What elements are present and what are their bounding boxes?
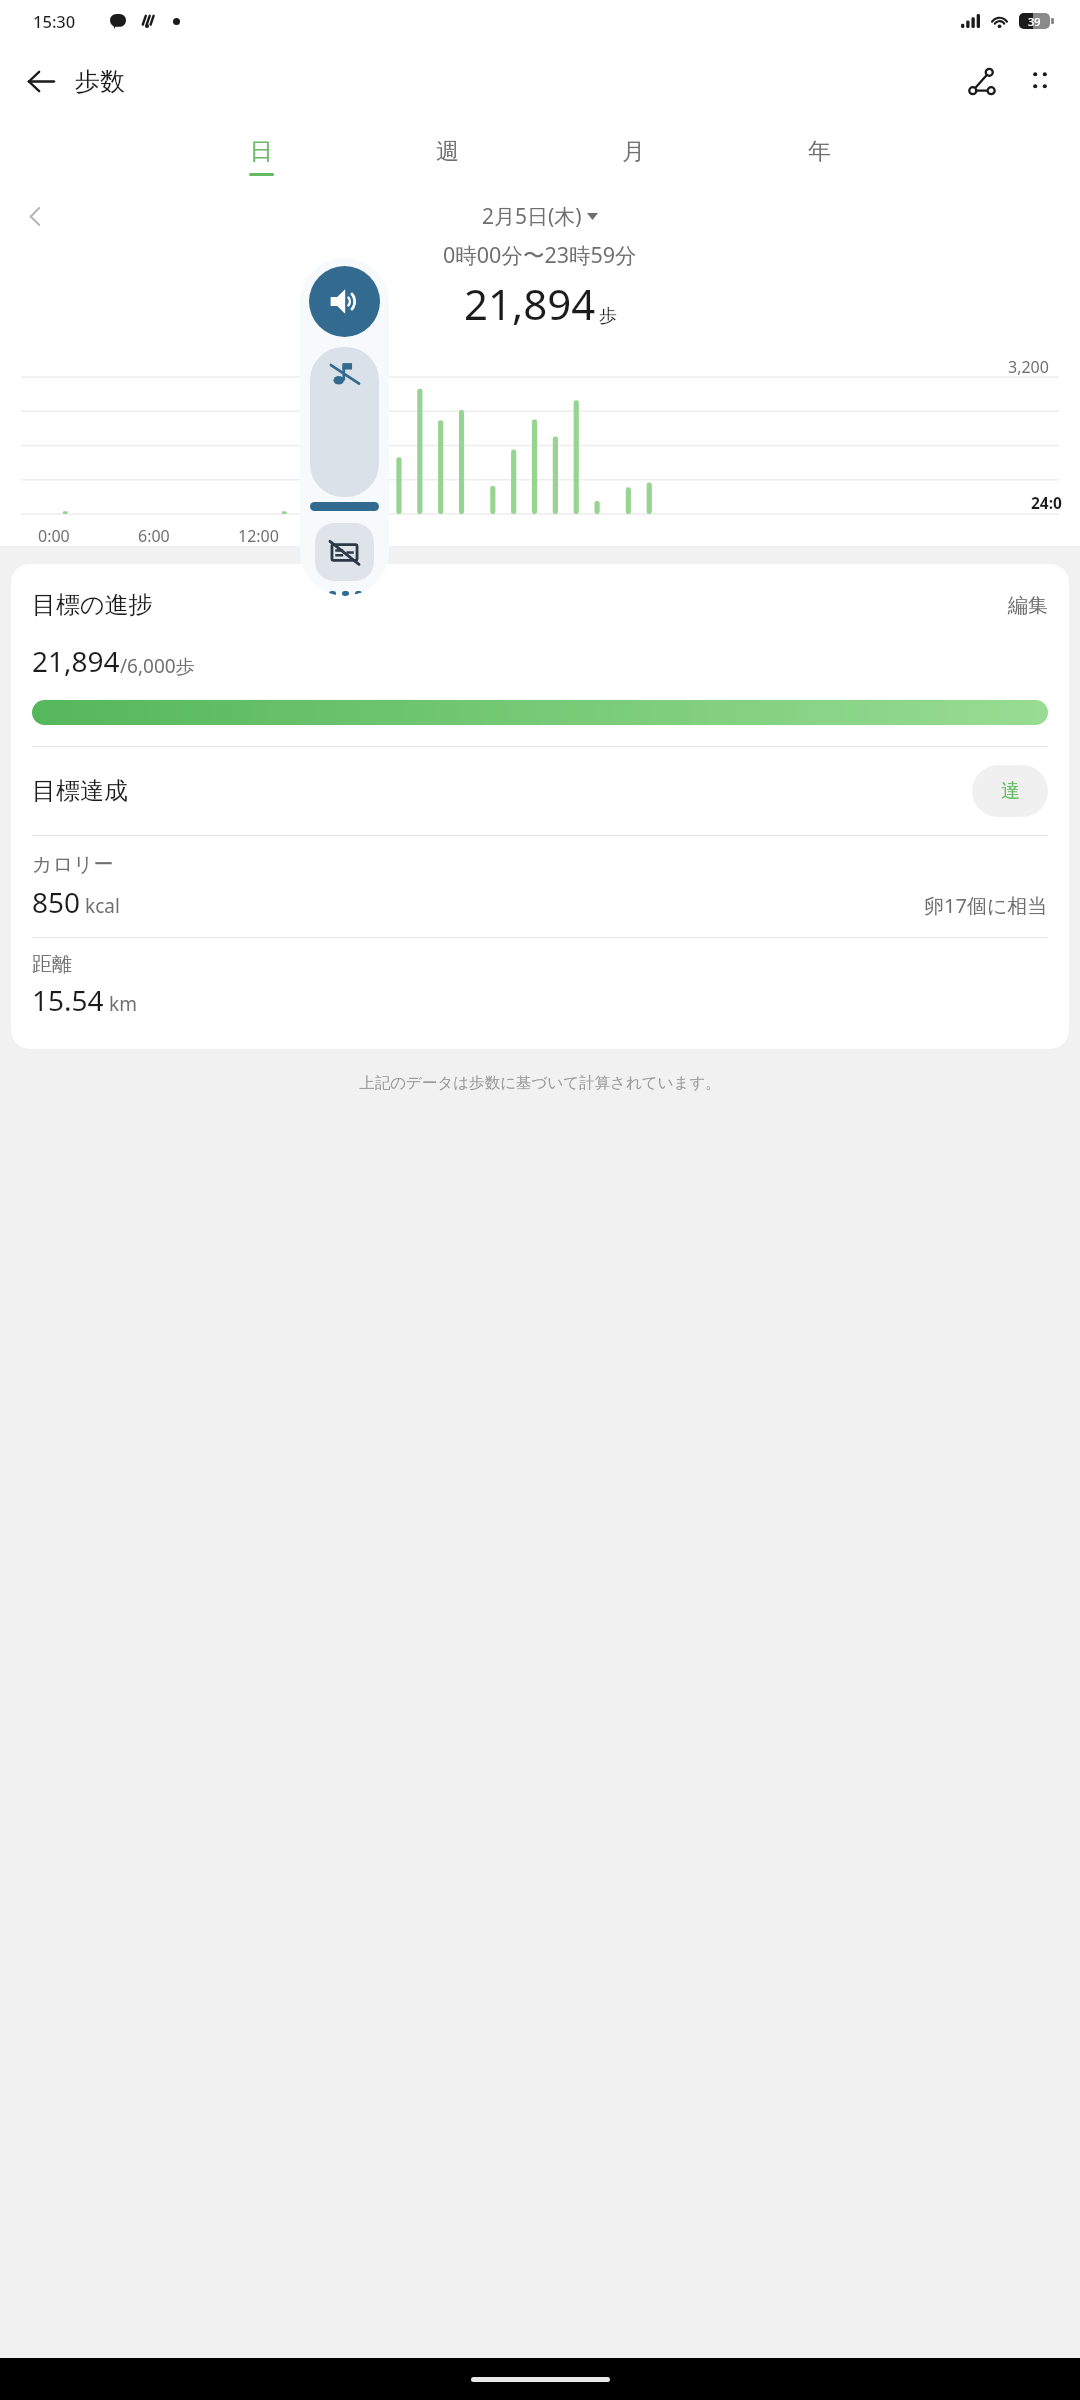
button[interactable]: 週 (354, 120, 540, 192)
button[interactable]: その他の設定 (317, 591, 373, 596)
button[interactable]: 音量スライダー (310, 347, 379, 497)
staticText: 2月5日(木) (482, 202, 582, 231)
staticText: km (109, 991, 137, 1017)
button[interactable]: 目標達成 (11, 747, 1069, 835)
staticText: 編集 (1008, 593, 1048, 618)
staticText: 上記のデータは歩数に基づいて計算されています。 (0, 1073, 1080, 1093)
staticText: 12:00 (238, 525, 279, 547)
staticText: 卵17個に相当 (924, 892, 1048, 919)
button[interactable]: メディア非表示 (315, 523, 374, 581)
staticText: 月 (622, 137, 645, 166)
staticText: 0時00分〜23時59分 (443, 240, 637, 269)
staticText: 達 (1001, 779, 1020, 803)
staticText: /6,000歩 (120, 653, 195, 679)
staticText: 距離 (32, 952, 72, 977)
button[interactable]: 編集 (1008, 593, 1048, 618)
staticText: 21,894 (464, 275, 596, 332)
staticText: 週 (436, 137, 459, 166)
staticText: 歩 (599, 305, 617, 328)
button[interactable]: 日 (168, 120, 354, 192)
staticText: 6:00 (138, 525, 170, 547)
staticText: 850 (32, 883, 81, 921)
staticText: 0:00 (38, 525, 70, 547)
staticText: 18:00 (338, 525, 379, 547)
button[interactable]: 音量 (309, 266, 380, 337)
staticText: kcal (85, 893, 120, 919)
button[interactable]: 2月5日(木) (482, 202, 598, 231)
button[interactable]: 戻る (14, 55, 66, 107)
staticText: 15.54 (32, 981, 104, 1019)
button[interactable]: 年 (726, 120, 912, 192)
staticText: 目標達成 (32, 776, 128, 806)
staticText: 3,200 (1008, 356, 1049, 378)
staticText: 15:30 (33, 10, 76, 32)
button[interactable]: 共有 (956, 55, 1008, 107)
staticText: 21,894 (32, 642, 120, 680)
staticText: 目標の進捗 (32, 590, 153, 620)
button[interactable]: その他のオプション (1014, 55, 1066, 107)
staticText: 39 (1028, 14, 1041, 29)
staticText: 24:0 (1031, 492, 1062, 513)
staticText: 年 (808, 137, 831, 166)
staticText: カロリー (32, 852, 114, 877)
button[interactable]: 月 (540, 120, 726, 192)
staticText: 歩数 (75, 66, 125, 97)
button[interactable]: 前の日 (12, 193, 58, 239)
staticText: 日 (250, 137, 273, 166)
